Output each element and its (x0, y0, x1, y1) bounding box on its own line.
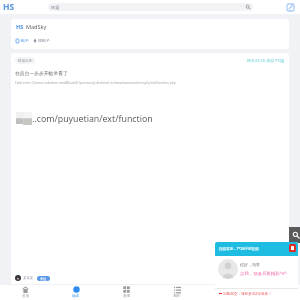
button[interactable]: Compose post (284, 1, 296, 13)
staticText: 我的 (173, 294, 181, 299)
button[interactable]: 我的 (152, 286, 202, 299)
button[interactable]: Search (289, 227, 300, 243)
staticText: 在后台一步步开帖常看了 (15, 70, 68, 76)
staticText: 昨天22:16 来自 PC端 (247, 58, 285, 63)
staticText: HS (16, 23, 24, 30)
staticText: 搜索 (51, 5, 60, 10)
staticText: Fatal error: Cannot redeclare newBBcode(… (15, 81, 176, 85)
button[interactable]: 关注 (40, 276, 47, 281)
staticText: 关注 (40, 277, 47, 281)
staticText: 你好，游客 (240, 262, 260, 267)
staticText: MadSky (26, 23, 47, 30)
button[interactable]: 你好，游客 (218, 259, 298, 279)
button[interactable]: 问题提交：请您多花2年进来！ (219, 289, 298, 298)
staticText: 某某某 (23, 276, 34, 280)
staticText: 动态 (72, 294, 80, 299)
staticText: ..com/puyuetian/ext/function (32, 113, 153, 125)
button[interactable]: 搜索 (48, 3, 253, 11)
staticText: 帖子 (21, 38, 29, 43)
staticText: 在线客服 - 7*24小时在线 (219, 246, 259, 251)
staticText: ·错误记录· (17, 58, 33, 63)
button[interactable]: 设置 (202, 286, 252, 299)
staticText: 问题提交：请您多花2年进来！ (223, 291, 272, 296)
button[interactable]: 动态 (51, 286, 101, 299)
staticText: 设置 (223, 294, 231, 299)
button[interactable]: 发现 (101, 286, 152, 299)
button[interactable]: 首页 (0, 286, 51, 299)
staticText: 发现 (123, 294, 131, 299)
button[interactable]: Close chat (289, 244, 296, 252)
staticText: 搜帖子 (38, 38, 50, 43)
staticText: 点我，登录后更精彩^v^ (240, 270, 287, 276)
staticText: 首页 (22, 294, 30, 299)
staticText: HS (3, 1, 15, 13)
